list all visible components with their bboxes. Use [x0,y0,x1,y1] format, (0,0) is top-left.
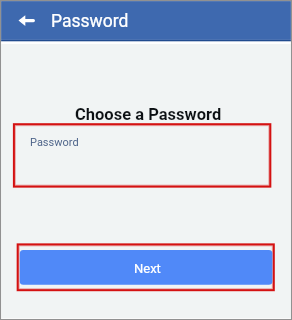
staticText: Next [134,261,161,276]
button[interactable]: Password [13,123,271,187]
staticText: Password [30,136,79,149]
staticText: Choose a Password [75,105,222,124]
button[interactable]: Next [20,250,272,285]
staticText: Password [51,11,129,32]
button[interactable]: Navigate up [8,1,44,40]
